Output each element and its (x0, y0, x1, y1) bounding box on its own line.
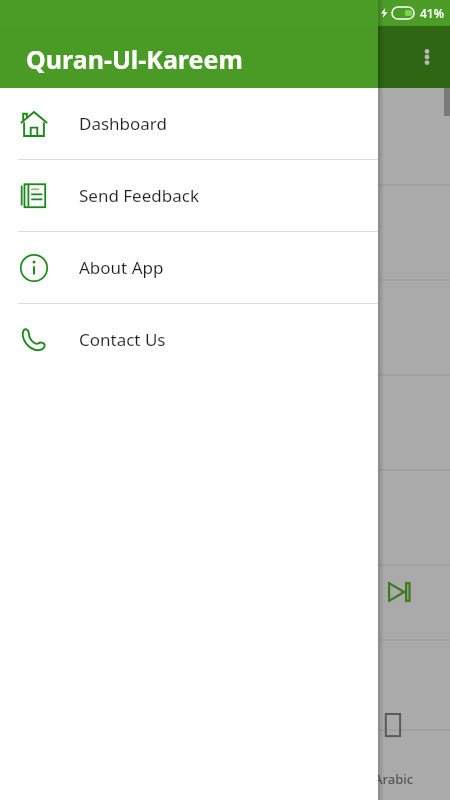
staticText: About App (79, 256, 164, 279)
staticText: 41% (420, 5, 444, 21)
button[interactable]: Contact Us (0, 304, 378, 375)
button[interactable]: Arabic (372, 710, 450, 798)
button[interactable]: Send Feedback (0, 160, 378, 231)
button[interactable]: About App (0, 232, 378, 303)
button[interactable]: More options (404, 34, 450, 80)
staticText: Quran-Ul-Kareem (26, 42, 243, 76)
staticText: Contact Us (79, 328, 166, 351)
staticText: Arabic (374, 770, 414, 788)
button[interactable]: Next (383, 575, 417, 609)
button[interactable]: Dashboard (0, 88, 378, 159)
staticText: Dashboard (79, 112, 168, 135)
staticText: Send Feedback (79, 184, 199, 207)
